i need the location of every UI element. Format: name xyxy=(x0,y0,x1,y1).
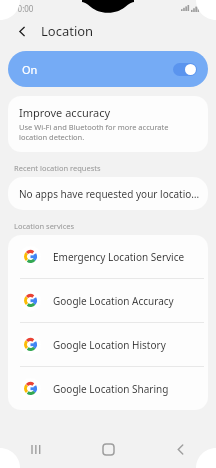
staticText: Google Location Accuracy xyxy=(53,294,174,308)
staticText: Emergency Location Service xyxy=(53,250,185,264)
button[interactable]: Google Location Accuracy xyxy=(8,279,208,322)
button[interactable]: Google Location Sharing xyxy=(8,367,208,410)
staticText: Google Location History xyxy=(53,338,166,352)
button[interactable]: Back xyxy=(12,21,32,41)
staticText: On xyxy=(22,62,38,77)
button[interactable]: Back xyxy=(144,430,216,468)
button[interactable]: Home xyxy=(72,430,144,468)
button[interactable]: Google Location History xyxy=(8,323,208,366)
button[interactable]: Emergency Location Service xyxy=(8,235,208,278)
staticText: Location services xyxy=(14,221,75,231)
staticText: Improve accuracy xyxy=(19,105,111,120)
button[interactable]: On xyxy=(8,51,208,87)
button[interactable]: Recents xyxy=(0,430,72,468)
staticText: Recent location requests xyxy=(14,163,101,173)
staticText: No apps have requested your location.. xyxy=(19,187,202,201)
staticText: 10:00 xyxy=(13,3,34,14)
staticText: Use Wi-Fi and Bluetooth for more accurat… xyxy=(19,122,197,142)
button[interactable]: Improve accuracy xyxy=(8,96,208,152)
staticText: Location xyxy=(41,22,94,40)
staticText: Google Location Sharing xyxy=(53,382,169,396)
button[interactable]: No apps have requested your location.. xyxy=(8,177,208,210)
